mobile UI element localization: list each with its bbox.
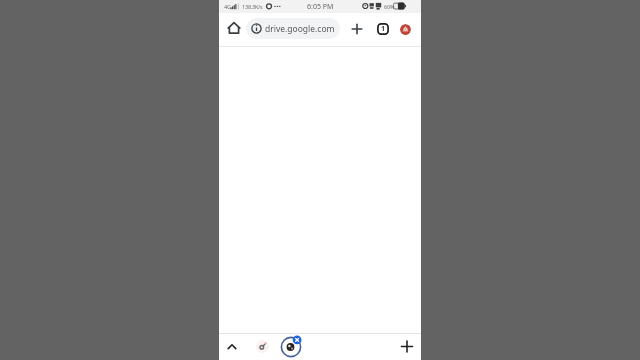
button[interactable] <box>349 21 365 37</box>
button[interactable] <box>279 336 303 360</box>
staticText: 60% <box>384 3 395 10</box>
button[interactable] <box>399 339 415 355</box>
button[interactable] <box>256 340 269 353</box>
button[interactable] <box>224 339 240 353</box>
button[interactable] <box>226 20 242 36</box>
button[interactable]: drive.google.com <box>246 18 340 39</box>
staticText: 1 <box>381 24 386 34</box>
staticText: 6:05 PM <box>307 2 334 12</box>
staticText: 138.3K/s <box>242 3 263 10</box>
staticText: drive.google.com <box>265 23 335 35</box>
staticText: 4G <box>224 3 231 10</box>
button[interactable] <box>400 24 411 35</box>
button[interactable]: 1 <box>377 23 389 35</box>
